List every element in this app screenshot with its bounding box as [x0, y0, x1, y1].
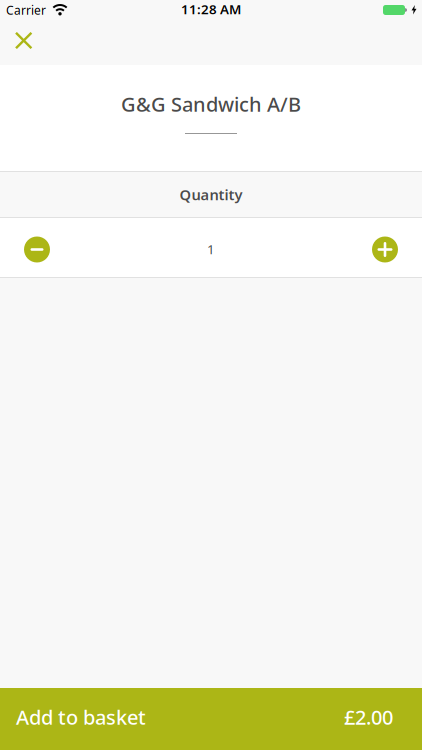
staticText: £2.00 [344, 704, 393, 730]
staticText: Carrier [6, 2, 46, 18]
button[interactable]: Close [0, 32, 32, 49]
staticText: Quantity [179, 185, 242, 204]
staticText: 1 [207, 240, 215, 258]
button[interactable]: Decrease quantity [24, 236, 50, 262]
staticText: 11:28 AM [181, 0, 241, 18]
staticText: Add to basket [16, 704, 146, 730]
staticText: G&G Sandwich A/B [121, 91, 301, 117]
button[interactable]: Add to basket [0, 688, 422, 750]
button[interactable]: Increase quantity [372, 236, 398, 262]
